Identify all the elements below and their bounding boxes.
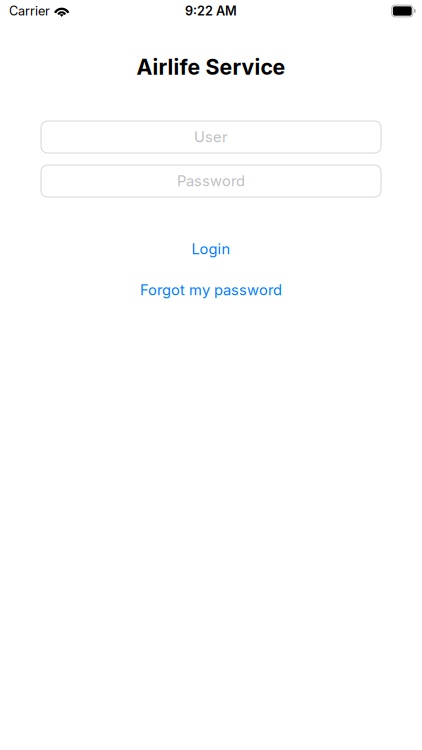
staticText: Password [177,172,245,190]
staticText: Carrier [9,3,50,19]
staticText: Forgot my password [140,281,282,299]
button[interactable]: Forgot my password [0,279,422,301]
button[interactable]: User [41,121,381,153]
button[interactable]: Password [41,165,381,197]
staticText: Airlife Service [136,54,285,80]
button[interactable]: Login [0,238,422,260]
staticText: Login [191,240,230,258]
staticText: 9:22 AM [185,3,237,19]
staticText: User [194,128,228,146]
